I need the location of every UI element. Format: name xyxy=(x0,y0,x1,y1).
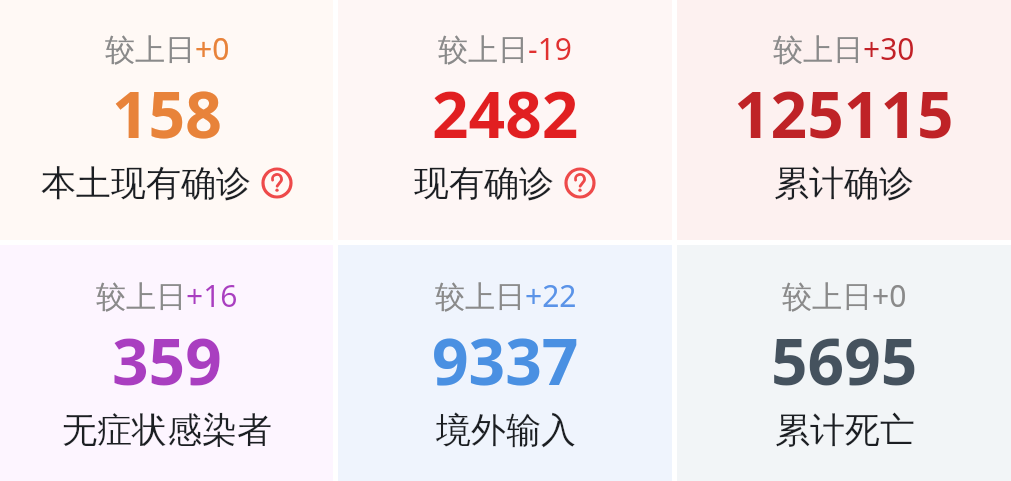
staticText: 较上日+16 xyxy=(96,275,238,316)
button[interactable]: 较上日-19 xyxy=(338,0,672,240)
other: Help xyxy=(261,167,293,199)
button[interactable]: 较上日+30 xyxy=(677,0,1011,240)
staticText: 本土现有确诊 xyxy=(41,161,251,205)
staticText: 境外输入 xyxy=(436,408,576,452)
staticText: 2482 xyxy=(432,70,579,157)
staticText: 9337 xyxy=(432,317,579,404)
staticText: 较上日+22 xyxy=(435,275,577,316)
staticText: 5695 xyxy=(771,317,918,404)
staticText: 158 xyxy=(112,70,222,157)
staticText: 较上日+0 xyxy=(782,275,907,316)
button[interactable]: 较上日+0 xyxy=(677,245,1011,481)
staticText: 较上日+0 xyxy=(105,28,230,69)
staticText: 较上日-19 xyxy=(438,28,572,69)
staticText: 累计确诊 xyxy=(774,161,914,205)
button[interactable]: 较上日+0 xyxy=(0,0,333,240)
button[interactable]: 较上日+22 xyxy=(338,245,672,481)
staticText: 现有确诊 xyxy=(414,161,554,205)
staticText: 较上日+30 xyxy=(773,28,915,69)
staticText: 无症状感染者 xyxy=(62,408,272,452)
staticText: 125115 xyxy=(734,70,954,157)
other: Help xyxy=(564,167,596,199)
button[interactable]: 较上日+16 xyxy=(0,245,333,481)
staticText: 359 xyxy=(112,317,222,404)
staticText: 累计死亡 xyxy=(775,408,915,452)
